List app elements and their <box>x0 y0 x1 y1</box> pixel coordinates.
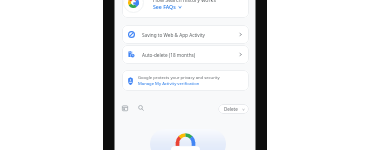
button[interactable]: Search <box>134 101 148 115</box>
button[interactable]: Filter by date <box>118 101 132 115</box>
button[interactable]: Delete <box>218 104 249 114</box>
staticText: Auto-delete (18 months) <box>142 52 196 58</box>
button[interactable]: See FAQs <box>153 3 182 10</box>
button[interactable]: Saving to Web & App Activity <box>122 25 249 44</box>
staticText: Delete <box>224 106 238 112</box>
button[interactable]: Google protects your privacy and securit… <box>122 70 249 91</box>
staticText: See FAQs <box>153 3 176 10</box>
button[interactable] <box>122 0 249 18</box>
staticText: Google protects your privacy and securit… <box>138 75 220 81</box>
staticText: Manage My Activity verification <box>138 81 200 87</box>
button[interactable]: Auto-delete (18 months) <box>122 45 249 64</box>
staticText: How Search history works <box>153 0 216 3</box>
staticText: Saving to Web & App Activity <box>142 32 206 38</box>
